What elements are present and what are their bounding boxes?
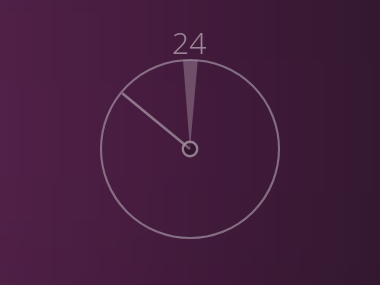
button[interactable]: 24 hour analog watch face bbox=[0, 0, 380, 285]
